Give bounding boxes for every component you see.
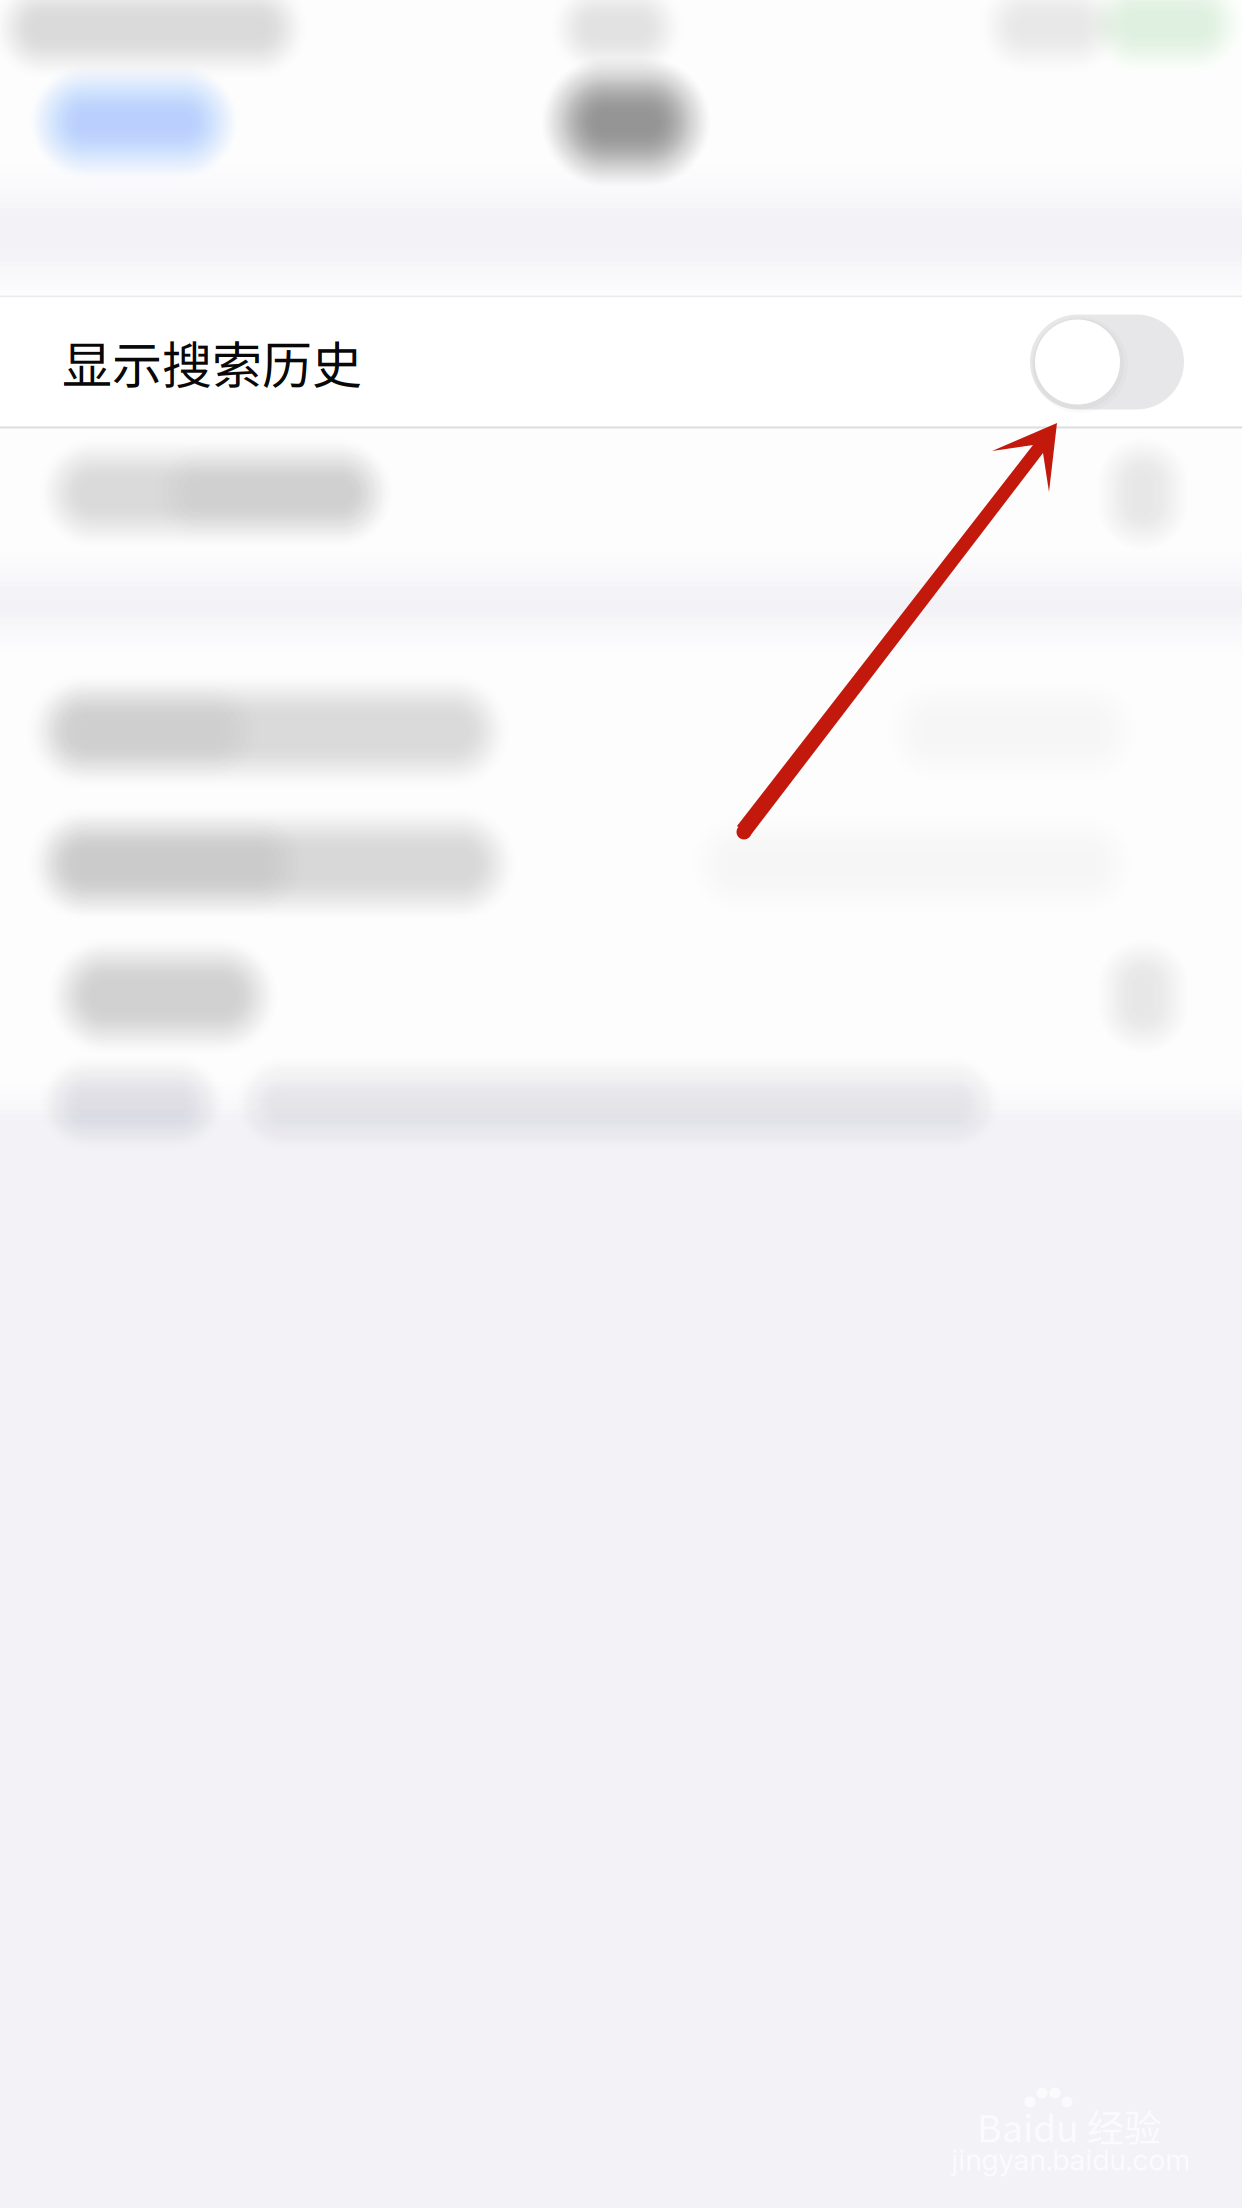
staticText: Baidu 经验 xyxy=(977,2099,1161,2153)
staticText: jingyan.baidu.com xyxy=(951,2143,1190,2177)
button[interactable]: 显示搜索历史 xyxy=(0,295,1242,428)
staticText: 显示搜索历史 xyxy=(62,326,362,398)
button[interactable]: 显示搜索历史 xyxy=(1030,314,1184,409)
